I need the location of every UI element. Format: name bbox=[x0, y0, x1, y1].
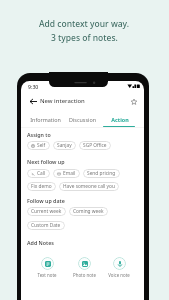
button[interactable]: Discussion bbox=[64, 112, 101, 127]
button[interactable]: Action bbox=[101, 112, 138, 127]
staticText: Next follow up bbox=[27, 158, 65, 165]
staticText: Sanjay bbox=[57, 142, 72, 149]
staticText: Coming week bbox=[73, 208, 104, 215]
button[interactable]: Custom Date bbox=[27, 221, 65, 230]
staticText: Text note bbox=[37, 272, 57, 278]
button[interactable]: Email bbox=[53, 169, 80, 178]
button[interactable]: Voice note bbox=[98, 257, 140, 278]
button[interactable]: Coming week bbox=[69, 207, 108, 216]
button[interactable]: Sanjay bbox=[53, 141, 76, 150]
staticText: Fix demo bbox=[31, 183, 52, 190]
button[interactable]: Photo note bbox=[63, 257, 105, 278]
staticText: Send pricing bbox=[87, 170, 116, 177]
staticText: Call bbox=[37, 170, 46, 177]
staticText: Discussion bbox=[69, 116, 96, 123]
button[interactable]: Current week bbox=[27, 207, 66, 216]
staticText: Add context your way. bbox=[39, 18, 130, 30]
staticText: Current week bbox=[31, 208, 62, 215]
staticText: SGP Office bbox=[83, 142, 107, 149]
button[interactable]: Send pricing bbox=[83, 169, 120, 178]
button[interactable]: Self bbox=[27, 141, 50, 150]
staticText: Custom Date bbox=[31, 222, 61, 229]
button[interactable]: Text note bbox=[26, 257, 68, 278]
button[interactable]: Back bbox=[27, 95, 40, 108]
staticText: Information bbox=[30, 116, 61, 123]
staticText: 9:30 bbox=[28, 83, 39, 90]
button[interactable]: Call bbox=[27, 169, 50, 178]
button[interactable]: Information bbox=[27, 112, 64, 127]
button[interactable]: Fix demo bbox=[27, 182, 56, 191]
staticText: Action bbox=[111, 116, 129, 123]
staticText: New interaction bbox=[40, 97, 85, 105]
staticText: Photo note bbox=[73, 272, 96, 278]
staticText: Voice note bbox=[108, 272, 130, 278]
button[interactable]: Have someone call you bbox=[59, 182, 119, 191]
staticText: Assign to bbox=[27, 131, 51, 138]
staticText: Add Notes bbox=[27, 239, 54, 246]
staticText: Self bbox=[37, 142, 46, 149]
button[interactable]: SGP Office bbox=[79, 141, 111, 150]
button[interactable]: Favorite bbox=[127, 95, 140, 108]
staticText: Email bbox=[63, 170, 76, 177]
staticText: Follow up date bbox=[27, 197, 65, 204]
staticText: 3 types of notes. bbox=[51, 32, 118, 44]
staticText: Have someone call you bbox=[63, 183, 115, 190]
